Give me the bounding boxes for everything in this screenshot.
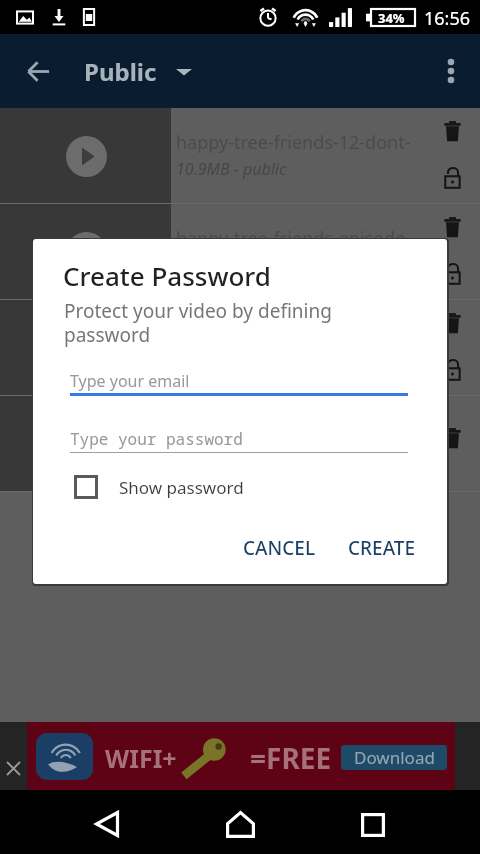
staticText: Show password xyxy=(119,476,244,499)
button[interactable]: happy-tree-friends-12-dont- xyxy=(0,108,480,204)
staticText: Create Password xyxy=(63,258,271,293)
staticText: happy-tree-friends-09-hide- xyxy=(176,322,408,347)
button[interactable]: CANCEL xyxy=(233,527,326,569)
staticText: 16:56 xyxy=(424,6,471,31)
staticText: 34% xyxy=(378,9,405,27)
button[interactable]: happy-tree-friends-09-hide- xyxy=(0,300,480,396)
staticText: Download xyxy=(354,746,435,769)
button[interactable]: Back xyxy=(48,790,168,854)
button[interactable]: Delete xyxy=(436,115,466,145)
staticText: CANCEL xyxy=(243,535,316,561)
button[interactable]: Home xyxy=(180,790,300,854)
staticText: Type your password xyxy=(70,428,243,450)
staticText: happy-tree-friends-08-boat- xyxy=(176,418,410,443)
button[interactable]: Recents xyxy=(314,790,434,854)
button[interactable]: Lock xyxy=(436,350,466,380)
button[interactable]: More options xyxy=(433,53,469,89)
button[interactable]: Back xyxy=(18,51,58,91)
staticText: Type your email xyxy=(70,370,190,392)
staticText: happy-tree-friends-12-dont- xyxy=(176,130,411,155)
button[interactable]: WIFI+ xyxy=(27,722,455,790)
staticText: 4.1MB - public xyxy=(176,446,278,468)
staticText: 8.2MB - public xyxy=(176,254,278,276)
staticText: CREATE xyxy=(348,535,416,561)
button[interactable]: Lock xyxy=(436,158,466,188)
button[interactable]: Show password xyxy=(74,475,244,499)
staticText: WIFI+ xyxy=(105,741,177,775)
button[interactable]: Delete xyxy=(436,211,466,241)
button[interactable]: happy-tree-friends-08-boat- xyxy=(0,396,480,492)
button[interactable]: Close ad xyxy=(0,722,27,790)
button[interactable]: Delete xyxy=(436,422,466,452)
button[interactable]: Delete xyxy=(436,307,466,337)
staticText: =FREE xyxy=(250,739,332,777)
staticText: 10.9MB - public xyxy=(176,158,287,180)
button[interactable]: Public xyxy=(84,55,192,88)
staticText: Protect your video by defining password xyxy=(64,298,332,347)
staticText: happy-tree-friends-episode- xyxy=(176,226,412,251)
button[interactable]: CREATE xyxy=(338,527,426,569)
button[interactable]: happy-tree-friends-episode- xyxy=(0,204,480,300)
button[interactable]: Download xyxy=(341,745,447,770)
staticText: Public xyxy=(84,55,157,88)
button[interactable]: Lock xyxy=(436,254,466,284)
